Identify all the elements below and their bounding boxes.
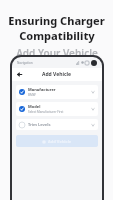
button[interactable]: Add Vehicle bbox=[16, 135, 98, 147]
staticText: Compatibility bbox=[19, 28, 95, 43]
staticText: Add Vehicle bbox=[48, 139, 72, 144]
staticText: Add Your Vehicle bbox=[16, 46, 98, 60]
staticText: Select Manufacturer First bbox=[28, 110, 64, 114]
staticText: Model bbox=[28, 104, 41, 109]
button[interactable]: Manufacturer bbox=[16, 85, 98, 99]
staticText: Navigation bbox=[17, 61, 33, 65]
staticText: Trim Levels bbox=[28, 122, 51, 127]
staticText: Add Vehicle bbox=[42, 71, 72, 78]
button[interactable]: Trim Levels bbox=[16, 119, 98, 130]
staticText: BMW bbox=[28, 93, 36, 97]
staticText: Ensuring Charger bbox=[8, 13, 105, 28]
button[interactable]: Model bbox=[16, 102, 98, 116]
staticText: Manufacturer bbox=[28, 87, 56, 92]
button[interactable]: Back bbox=[15, 70, 24, 79]
